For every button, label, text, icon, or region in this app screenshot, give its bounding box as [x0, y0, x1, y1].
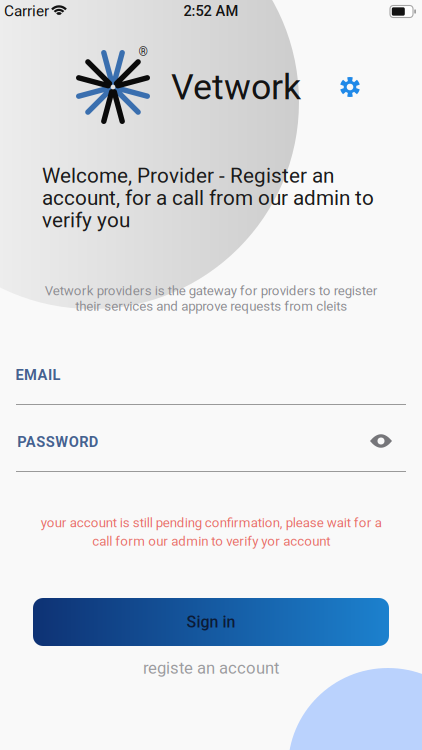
- staticText: Welcome, Provider - Register an account,…: [42, 164, 374, 232]
- button[interactable]: Settings: [0, 0, 422, 750]
- staticText: Carrier: [4, 2, 49, 20]
- button[interactable]: Show password: [0, 0, 422, 750]
- staticText: your account is still pending confirmati…: [40, 515, 381, 549]
- staticText: 2:52 AM: [183, 2, 238, 20]
- staticText: Sign in: [186, 613, 235, 631]
- button[interactable]: registe an account: [101, 653, 321, 683]
- staticText: ®: [138, 45, 147, 59]
- staticText: EMAIL: [15, 366, 60, 384]
- staticText: registe an account: [143, 658, 279, 678]
- button[interactable]: Sign in: [33, 598, 389, 646]
- staticText: PASSWORD: [17, 433, 99, 451]
- staticText: Vetwork: [171, 66, 301, 108]
- staticText: Vetwork providers is the gateway for pro…: [44, 283, 377, 314]
